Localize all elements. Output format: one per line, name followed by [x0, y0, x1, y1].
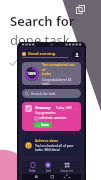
- button[interactable]: Duplicate: [76, 5, 85, 14]
- staticText: Done: [41, 123, 49, 127]
- button[interactable]: Add: [43, 161, 53, 174]
- button[interactable]: Profile: [72, 50, 81, 59]
- button[interactable]: Achieve done: [22, 135, 81, 155]
- button[interactable]: 100%: [22, 62, 81, 85]
- staticText: Today, 8:00: [56, 106, 72, 110]
- button[interactable]: Grocery: [22, 102, 81, 131]
- staticText: You completed out of tasks: [42, 62, 78, 76]
- button[interactable]: Tasks: [27, 161, 38, 174]
- staticText: Search for: [10, 12, 75, 30]
- staticText: Grocery: [35, 105, 51, 110]
- button[interactable]: Search for task: [22, 89, 81, 98]
- staticText: Buy groceries: [35, 111, 56, 115]
- staticText: done task: [10, 31, 70, 49]
- button[interactable]: More options: [72, 105, 78, 111]
- staticText: You've checked all of your tasks. Well d…: [35, 144, 74, 152]
- staticText: Congratulations! All tasks completed: [42, 78, 78, 85]
- staticText: Add: [46, 169, 51, 173]
- staticText: Achieve done: [35, 138, 59, 143]
- staticText: Tasks: [29, 169, 36, 173]
- staticText: Good evening: [28, 51, 56, 56]
- button[interactable]: Done: [34, 122, 52, 128]
- button[interactable]: Categories: [58, 161, 76, 174]
- staticText: milkshake variation: [39, 116, 67, 120]
- staticText: Categories: [60, 169, 74, 173]
- staticText: Search for task: [31, 91, 56, 96]
- staticText: 100%: [28, 72, 36, 76]
